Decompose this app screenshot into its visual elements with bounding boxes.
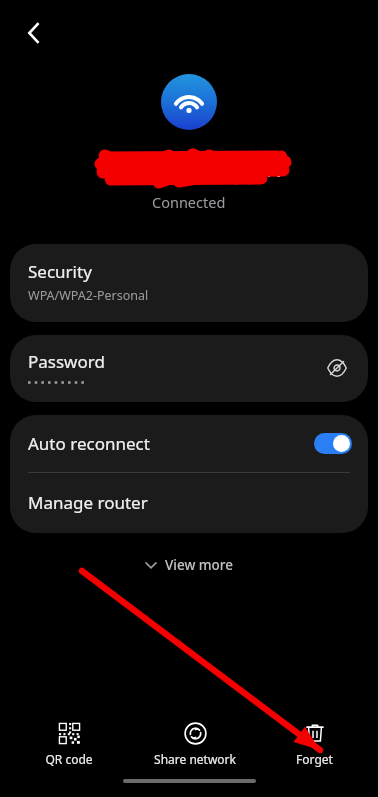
button[interactable]: Auto reconnect (10, 415, 368, 472)
button[interactable]: Forget (280, 717, 349, 771)
button[interactable]: Manage router (10, 473, 368, 533)
staticText: Auto reconnect (28, 432, 314, 455)
staticText: View more (165, 556, 234, 574)
button[interactable]: Back (11, 11, 55, 55)
button[interactable]: View more (130, 551, 248, 579)
button[interactable]: Password (10, 335, 368, 402)
staticText: Share network (154, 751, 236, 767)
staticText: Connected (152, 192, 226, 212)
staticText: Manage router (28, 491, 148, 514)
button[interactable]: Share network (138, 717, 252, 771)
staticText: Password (28, 350, 105, 373)
staticText: N (266, 155, 282, 184)
staticText: QR code (45, 751, 93, 767)
staticText: Forget (296, 751, 333, 767)
button[interactable]: QR code (29, 717, 109, 771)
button[interactable]: Show password (320, 351, 354, 385)
staticText: Security (28, 260, 92, 283)
button[interactable]: Security (10, 244, 368, 322)
staticText: WPA/WPA2-Personal (28, 287, 149, 304)
